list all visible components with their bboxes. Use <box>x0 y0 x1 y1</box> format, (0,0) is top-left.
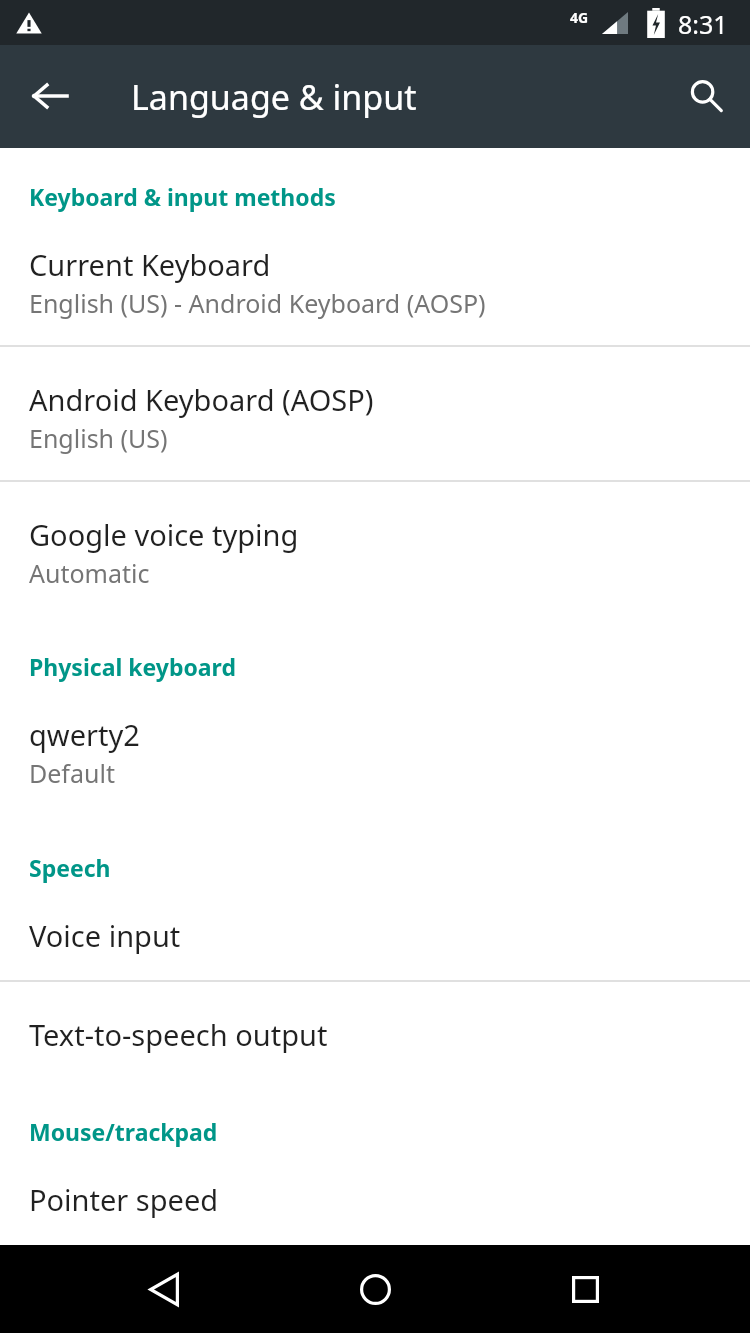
staticText: Language & input <box>131 74 417 120</box>
staticText: Speech <box>29 852 111 883</box>
button[interactable]: Home <box>335 1249 415 1329</box>
staticText: Google voice typing <box>29 515 299 554</box>
staticText: 8:31 <box>678 7 728 41</box>
staticText: Physical keyboard <box>29 651 236 682</box>
staticText: Mouse/trackpad <box>29 1116 218 1147</box>
button[interactable] <box>0 981 750 1081</box>
button[interactable] <box>0 695 750 810</box>
staticText: Android Keyboard (AOSP) <box>29 380 374 419</box>
staticText: Current Keyboard <box>29 245 271 284</box>
staticText: 4G <box>570 8 589 27</box>
staticText: Pointer speed <box>29 1180 219 1219</box>
staticText: Text-to-speech output <box>29 1015 328 1054</box>
staticText: English (US) <box>29 421 168 455</box>
staticText: Automatic <box>29 556 150 590</box>
staticText: Keyboard & input methods <box>29 181 336 212</box>
button[interactable] <box>0 481 750 611</box>
button[interactable]: Back <box>10 56 90 136</box>
button[interactable]: Recent apps <box>545 1249 625 1329</box>
button[interactable]: Back <box>125 1249 205 1329</box>
staticText: Voice input <box>29 916 181 955</box>
button[interactable] <box>0 896 750 980</box>
button[interactable]: Search <box>666 56 746 136</box>
staticText: English (US) - Android Keyboard (AOSP) <box>29 286 486 320</box>
button[interactable] <box>0 1160 750 1245</box>
staticText: qwerty2 <box>29 715 140 754</box>
button[interactable] <box>0 225 750 345</box>
button[interactable] <box>0 346 750 480</box>
staticText: Default <box>29 756 115 790</box>
